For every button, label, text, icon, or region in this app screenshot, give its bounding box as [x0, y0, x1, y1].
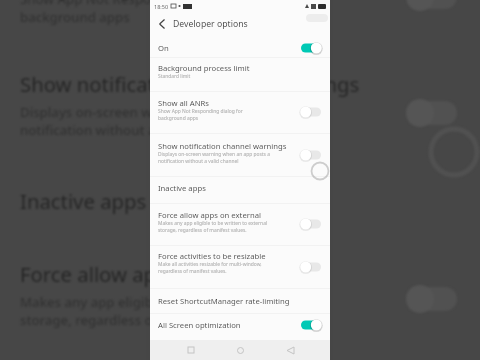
- staticText: Developer options: [173, 18, 248, 30]
- staticText: notification without a valid channel: [158, 158, 239, 165]
- button[interactable]: Switch on: [298, 317, 328, 333]
- staticText: All Screen optimization: [158, 320, 241, 330]
- button[interactable]: All Screen optimization: [150, 313, 330, 338]
- staticText: Make all activities resizable for multi-…: [158, 261, 262, 268]
- staticText: Makes any app eligible to be written to …: [158, 220, 268, 227]
- staticText: Force allow apps on external: [20, 260, 292, 288]
- staticText: Force activities to be resizable: [158, 251, 266, 261]
- staticText: Show notification channel warnings: [158, 141, 287, 151]
- staticText: Show App Not Responding dialog for: [158, 108, 243, 115]
- button[interactable]: Recent apps: [182, 341, 200, 359]
- staticText: storage, regardless of manifest values.: [158, 227, 247, 234]
- staticText: Inactive apps: [158, 183, 206, 193]
- button[interactable]: Back: [281, 341, 299, 359]
- button[interactable]: Show notification channel warnings: [150, 133, 330, 176]
- staticText: Show all ANRs: [158, 98, 210, 108]
- staticText: notification without a valid channel: [20, 121, 243, 139]
- button[interactable]: Switch off: [298, 147, 328, 163]
- staticText: Background process limit: [158, 63, 250, 73]
- staticText: Show notification channel warnings: [20, 70, 360, 98]
- staticText: regardless of manifest values.: [158, 268, 227, 275]
- button[interactable]: Inactive apps: [150, 176, 330, 203]
- staticText: Standard limit: [158, 73, 191, 80]
- button[interactable]: Navigate up: [154, 16, 170, 32]
- staticText: Reset ShortcutManager rate-limiting: [158, 296, 290, 306]
- staticText: Makes any app eligible to be written to …: [20, 293, 321, 311]
- button[interactable]: On: [150, 37, 330, 57]
- button[interactable]: Reset ShortcutManager rate-limiting: [150, 288, 330, 313]
- staticText: Displays on-screen warning when an app p…: [20, 103, 327, 121]
- staticText: Show App Not Responding dialog for: [20, 0, 252, 8]
- button[interactable]: Switch off: [298, 104, 328, 120]
- staticText: 18:50: [154, 3, 169, 10]
- button[interactable]: Force allow apps on external: [150, 203, 330, 245]
- button[interactable]: Switch on: [298, 40, 328, 56]
- staticText: Force allow apps on external: [158, 210, 261, 220]
- button[interactable]: Switch off: [298, 216, 328, 232]
- staticText: background apps: [20, 8, 130, 26]
- button[interactable]: Home: [231, 341, 249, 359]
- button[interactable]: Force activities to be resizable: [150, 245, 330, 288]
- button[interactable]: Show all ANRs: [150, 91, 330, 133]
- staticText: On: [158, 43, 169, 53]
- staticText: storage, regardless of manifest values.: [20, 311, 264, 329]
- staticText: Displays on-screen warning when an app p…: [158, 151, 270, 158]
- button[interactable]: Background process limit: [150, 57, 330, 91]
- staticText: Inactive apps: [20, 187, 147, 215]
- staticText: background apps: [158, 115, 199, 122]
- button[interactable]: Switch off: [298, 259, 328, 275]
